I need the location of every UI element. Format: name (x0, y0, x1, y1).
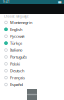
staticText: Русский (10, 34, 24, 39)
staticText: Polski (10, 61, 20, 66)
button[interactable]: Montenegrin (0, 19, 64, 26)
button[interactable]: English (0, 26, 64, 33)
button[interactable]: Português (0, 53, 64, 60)
staticText: Türkçe (10, 40, 22, 46)
staticText: 9:41 (3, 0, 10, 4)
staticText: Montenegrin (10, 20, 32, 25)
button[interactable]: Deutsch (0, 67, 64, 74)
staticText: ▮▮▮ (58, 0, 61, 3)
button[interactable]: Polski (0, 60, 64, 67)
staticText: Français (10, 75, 25, 80)
staticText: Português (10, 54, 27, 60)
button[interactable]: Français (0, 74, 64, 81)
button[interactable]: Türkçe (0, 40, 64, 47)
staticText: English (10, 27, 22, 32)
button[interactable]: Русский (0, 33, 64, 40)
staticText: Deutsch (10, 68, 24, 73)
button[interactable]: Italiano (0, 47, 64, 53)
staticText: Italiano (10, 47, 22, 53)
staticText: Español (10, 82, 23, 87)
staticText: Choose language (4, 15, 29, 18)
button[interactable]: Español (0, 81, 64, 88)
